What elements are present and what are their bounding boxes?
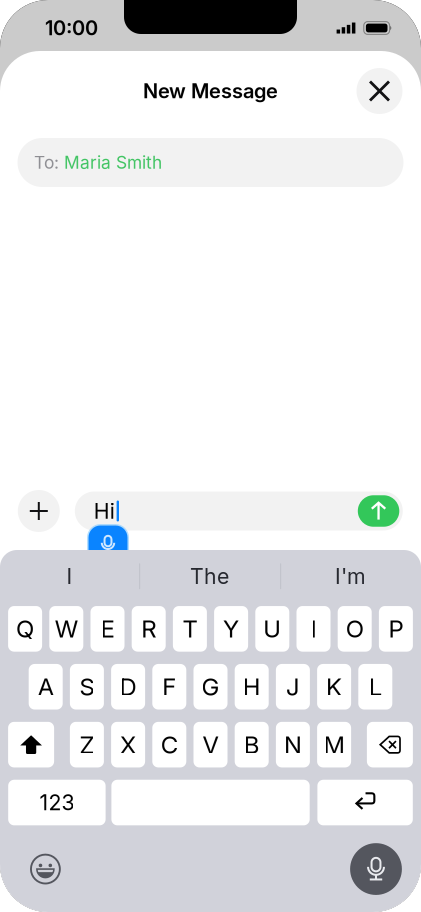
button[interactable]: Q	[8, 606, 42, 652]
button[interactable]: K	[317, 664, 351, 710]
button[interactable]: S	[70, 664, 104, 710]
button[interactable]: R	[132, 606, 166, 652]
button[interactable]: G	[193, 664, 227, 710]
button[interactable]: Y	[214, 606, 248, 652]
staticText: T	[182, 615, 197, 643]
staticText: U	[263, 615, 281, 643]
staticText: C	[161, 730, 178, 759]
staticText: M	[324, 730, 345, 759]
staticText: A	[38, 673, 54, 701]
staticText: X	[120, 730, 136, 759]
staticText: I	[310, 615, 316, 643]
staticText: J	[286, 673, 300, 701]
button[interactable]: Z	[70, 722, 104, 767]
button[interactable]: A	[29, 664, 63, 710]
button[interactable]: I	[296, 606, 330, 652]
staticText: L	[369, 673, 382, 701]
staticText: H	[243, 673, 261, 701]
button[interactable]: D	[111, 664, 145, 710]
staticText: W	[55, 615, 78, 643]
staticText: To:	[34, 152, 59, 173]
button[interactable]: Dictation	[350, 843, 402, 895]
button[interactable]: U	[255, 606, 289, 652]
button[interactable]: P	[379, 606, 413, 652]
button[interactable]: C	[152, 722, 186, 767]
staticText: Q	[16, 615, 34, 643]
staticText: S	[79, 673, 94, 701]
staticText: P	[388, 615, 403, 643]
staticText: The	[190, 564, 229, 589]
button[interactable]: I'm	[280, 549, 421, 603]
button[interactable]: The	[139, 549, 280, 603]
button[interactable]: N	[276, 722, 310, 767]
staticText: 123	[39, 790, 74, 815]
button[interactable]: Emoji keyboard	[21, 845, 69, 893]
button[interactable]: L	[358, 664, 392, 710]
button[interactable]: Delete	[367, 722, 413, 767]
button[interactable]: Shift	[8, 722, 54, 767]
button[interactable]: F	[152, 664, 186, 710]
staticText: Hi	[94, 498, 115, 524]
staticText: I'm	[335, 564, 366, 589]
staticText: N	[284, 730, 302, 759]
staticText: K	[326, 673, 342, 701]
staticText: F	[162, 673, 176, 701]
button[interactable]: W	[49, 606, 83, 652]
button[interactable]: E	[90, 606, 124, 652]
staticText: B	[244, 730, 260, 759]
button[interactable]: Add attachment	[18, 490, 60, 532]
staticText: Z	[79, 730, 94, 759]
button[interactable]: V	[193, 722, 227, 767]
staticText: I	[66, 564, 72, 589]
staticText: Y	[223, 615, 239, 643]
button[interactable]: 123	[8, 780, 106, 825]
button[interactable]: I	[0, 549, 139, 603]
staticText: E	[100, 615, 114, 643]
button[interactable]: J	[276, 664, 310, 710]
button[interactable]: X	[111, 722, 145, 767]
button[interactable]: Close	[356, 68, 402, 114]
staticText: New Message	[143, 79, 278, 103]
button[interactable]: B	[235, 722, 269, 767]
button[interactable]: Return	[317, 780, 413, 825]
staticText: O	[346, 615, 364, 643]
button[interactable]: T	[173, 606, 207, 652]
button[interactable]: H	[235, 664, 269, 710]
staticText: G	[201, 673, 219, 701]
staticText: V	[202, 730, 218, 759]
staticText: R	[141, 615, 156, 643]
button[interactable]: O	[338, 606, 372, 652]
button[interactable]: M	[317, 722, 351, 767]
staticText: 10:00	[45, 16, 98, 40]
staticText: D	[120, 673, 137, 701]
button[interactable]: Send	[358, 495, 399, 527]
staticText: Maria Smith	[64, 152, 162, 173]
button[interactable]: To:	[17, 138, 403, 187]
